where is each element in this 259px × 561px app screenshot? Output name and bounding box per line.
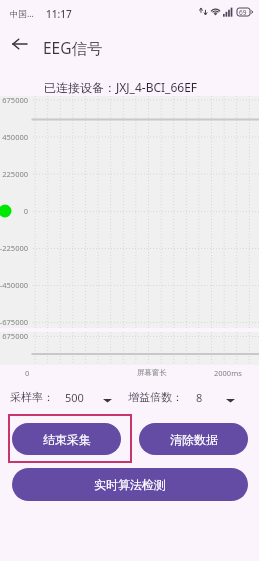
button[interactable]: Back: [6, 30, 34, 58]
staticText: 675000: [0, 331, 28, 341]
staticText: 已连接设备：JXJ_4-BCI_66EF: [44, 79, 198, 95]
staticText: 2000ms: [214, 368, 242, 378]
staticText: 增益倍数：: [128, 390, 183, 404]
staticText: 500: [65, 390, 84, 405]
staticText: 清除数据: [170, 432, 218, 447]
staticText: 11:17: [46, 7, 72, 21]
staticText: 450000: [0, 132, 28, 142]
staticText: 0: [0, 206, 28, 216]
staticText: 屏幕窗长: [137, 368, 167, 377]
staticText: 结束采集: [43, 432, 91, 447]
staticText: 675000: [0, 95, 28, 105]
button[interactable]: 增益倍数：: [124, 386, 242, 408]
button[interactable]: 清除数据: [139, 423, 248, 455]
staticText: 0: [25, 368, 30, 378]
staticText: -225000: [0, 243, 28, 253]
button[interactable]: 实时算法检测: [12, 468, 248, 501]
staticText: 中国...: [10, 8, 34, 20]
staticText: 8: [196, 390, 203, 405]
staticText: -675000: [0, 317, 28, 327]
staticText: 实时算法检测: [94, 477, 166, 492]
staticText: EEG信号: [43, 37, 103, 58]
staticText: -450000: [0, 280, 28, 290]
staticText: 69: [239, 8, 247, 16]
staticText: 225000: [0, 169, 28, 179]
button[interactable]: 采样率：: [8, 386, 116, 408]
staticText: 采样率：: [10, 390, 54, 404]
button[interactable]: 结束采集: [12, 423, 121, 455]
